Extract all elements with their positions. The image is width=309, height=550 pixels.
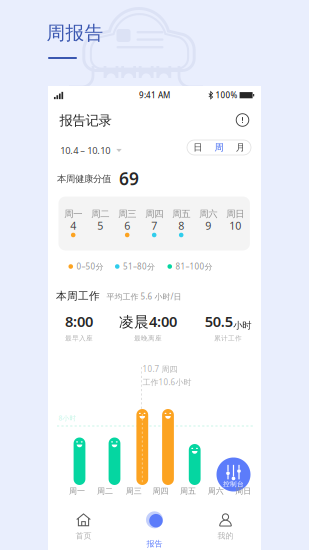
staticText: 9:41 AM [139,90,170,100]
staticText: 周一 [64,208,82,220]
button[interactable]: 周 [208,140,230,155]
button[interactable]: 10.4 – 10.10 [60,144,122,157]
staticText: 首页 [75,531,91,541]
staticText: 报告记录 [59,112,111,129]
button[interactable]: 首页 [48,504,119,550]
staticText: 累计工作 [214,334,242,342]
staticText: 10 [229,218,241,233]
button[interactable]: Info [235,113,249,127]
staticText: 本周工作 [56,289,100,302]
staticText: 8 [178,218,184,233]
staticText: 周三 [126,486,142,496]
staticText: 小时 [233,320,251,331]
staticText: 8小时 [58,414,76,422]
staticText: 周五 [172,208,190,220]
button[interactable]: 月 [230,140,251,155]
staticText: 周日 [226,208,244,220]
staticText: 报告 [146,539,162,549]
staticText: 8:00 [65,312,93,331]
staticText: 周一 [69,486,85,496]
staticText: 周四 [152,486,168,496]
staticText: 最晚离座 [134,334,162,342]
button[interactable]: 日 [187,140,208,155]
staticText: 控制台 [223,480,244,488]
staticText: 最早入座 [65,334,93,342]
staticText: 10.7 周四 [142,364,177,374]
staticText: 我的 [217,531,233,541]
staticText: 周六 [208,486,224,496]
staticText: 4 [70,218,76,233]
staticText: 周二 [91,208,109,220]
staticText: 周二 [97,486,113,496]
button[interactable]: 控制台 [216,457,250,491]
staticText: 本周健康分值 [57,173,111,185]
staticText: 凌晨4:00 [119,312,177,331]
staticText: 7 [151,218,157,233]
staticText: 周四 [145,208,163,220]
staticText: 10.4 – 10.10 [60,144,110,157]
staticText: 51–80分 [123,261,155,272]
staticText: 周日 [235,486,251,496]
staticText: 工作10.6小时 [142,377,191,387]
staticText: 0–50分 [76,261,103,272]
staticText: 81–100分 [175,261,212,272]
button[interactable]: 报告 [119,504,190,550]
staticText: 5 [97,218,103,233]
staticText: 50.5 [205,312,233,331]
staticText: 日 [193,142,202,153]
staticText: 周三 [118,208,136,220]
staticText: 周 [214,142,223,153]
button[interactable]: 我的 [190,504,261,550]
staticText: 9 [205,218,211,233]
staticText: 周五 [180,486,196,496]
staticText: 100% [215,90,237,100]
staticText: 周六 [199,208,217,220]
staticText: 周报告 [46,21,103,44]
staticText: 69 [119,167,139,190]
staticText: 6 [124,218,130,233]
staticText: 月 [236,142,245,153]
staticText: 平均工作 5.6 小时/日 [106,291,181,302]
